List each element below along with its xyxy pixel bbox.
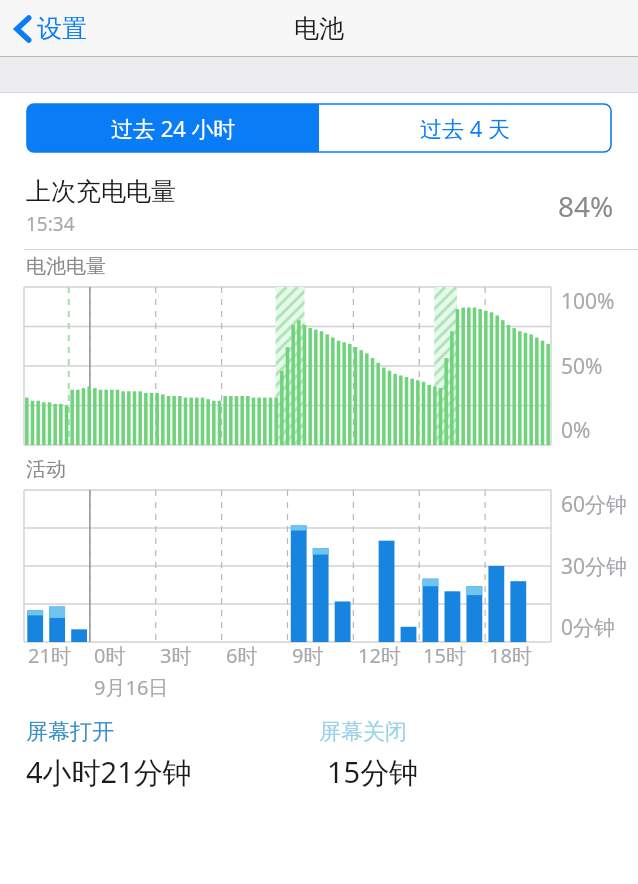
staticText: 电池 (294, 13, 344, 44)
staticText: 0分钟 (561, 613, 616, 642)
staticText: 活动 (26, 457, 66, 482)
staticText: 9时 (292, 642, 324, 669)
staticText: 12时 (358, 642, 401, 669)
button[interactable]: Back (0, 7, 97, 50)
staticText: 屏幕打开 (26, 718, 114, 746)
staticText: 15:34 (26, 211, 75, 237)
staticText: 15时 (423, 642, 466, 669)
button[interactable]: 过去 4 天 (319, 104, 611, 152)
staticText: 21时 (28, 642, 71, 669)
staticText: 电池电量 (26, 254, 106, 279)
staticText: 3时 (160, 642, 192, 669)
staticText: 设置 (37, 13, 87, 44)
staticText: 50% (561, 352, 603, 381)
staticText: 上次充电电量 (26, 176, 176, 207)
staticText: 4小时21分钟 (26, 752, 192, 792)
staticText: 9月16日 (94, 674, 169, 701)
staticText: 0% (561, 416, 591, 445)
staticText: 84% (558, 187, 614, 225)
staticText: 屏幕关闭 (319, 718, 407, 746)
staticText: 过去 24 小时 (111, 113, 236, 143)
staticText: 60分钟 (561, 490, 628, 519)
staticText: 6时 (226, 642, 258, 669)
button[interactable]: 过去 24 小时 (27, 104, 319, 152)
staticText: 100% (561, 287, 615, 316)
other: Back (14, 14, 32, 44)
staticText: 15分钟 (327, 752, 419, 792)
staticText: 过去 4 天 (420, 113, 511, 143)
staticText: 0时 (94, 642, 126, 669)
staticText: 18时 (489, 642, 532, 669)
staticText: 30分钟 (561, 552, 628, 581)
